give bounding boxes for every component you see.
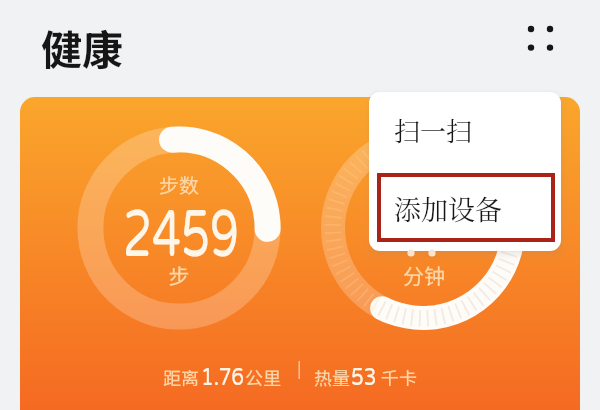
staticText: 2459 xyxy=(111,195,251,274)
staticText: 热量 xyxy=(314,364,350,390)
staticText: 公里 xyxy=(245,364,281,390)
staticText: 健康 xyxy=(41,17,123,76)
staticText: 扫一扫 xyxy=(394,111,473,148)
button[interactable]: 步数 xyxy=(20,97,580,410)
staticText: 53 xyxy=(351,363,377,392)
staticText: 千卡 xyxy=(381,364,417,390)
staticText: 步数 xyxy=(157,170,201,199)
button[interactable]: 扫一扫 xyxy=(369,92,561,173)
button[interactable]: 添加设备 xyxy=(369,173,561,251)
button[interactable]: More options xyxy=(510,8,570,68)
staticText: 1.76 xyxy=(201,363,243,392)
staticText: 步 xyxy=(167,260,191,290)
staticText: 距离 xyxy=(163,364,199,390)
staticText: 分钟 xyxy=(402,260,446,290)
staticText: 添加设备 xyxy=(394,189,502,228)
